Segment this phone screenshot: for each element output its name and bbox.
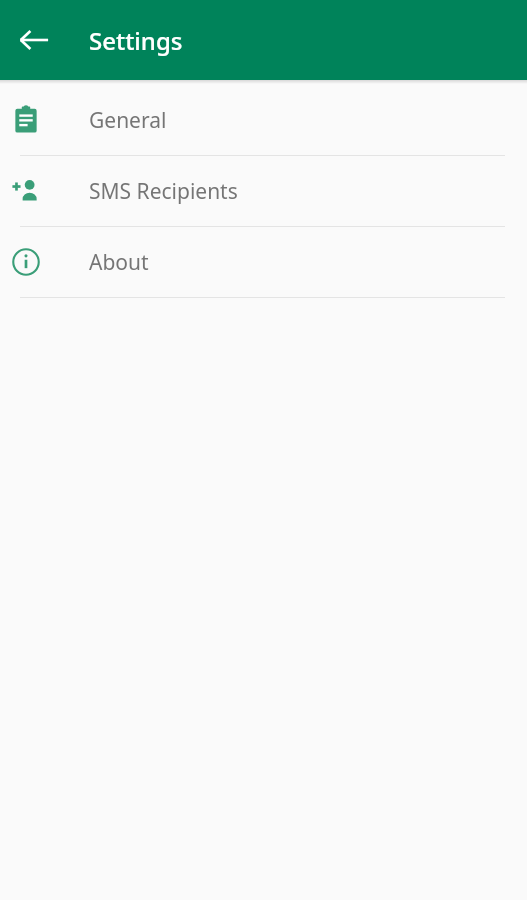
other: SMS Recipients xyxy=(0,156,89,226)
button[interactable]: About xyxy=(0,227,527,297)
button[interactable]: General xyxy=(0,85,527,155)
staticText: General xyxy=(89,106,167,135)
staticText: SMS Recipients xyxy=(89,177,238,206)
staticText: Settings xyxy=(89,24,183,57)
button[interactable]: SMS Recipients xyxy=(0,156,527,226)
other: About xyxy=(0,227,89,297)
staticText: About xyxy=(89,248,149,277)
button[interactable]: Back xyxy=(10,16,58,64)
other: General xyxy=(0,85,89,155)
